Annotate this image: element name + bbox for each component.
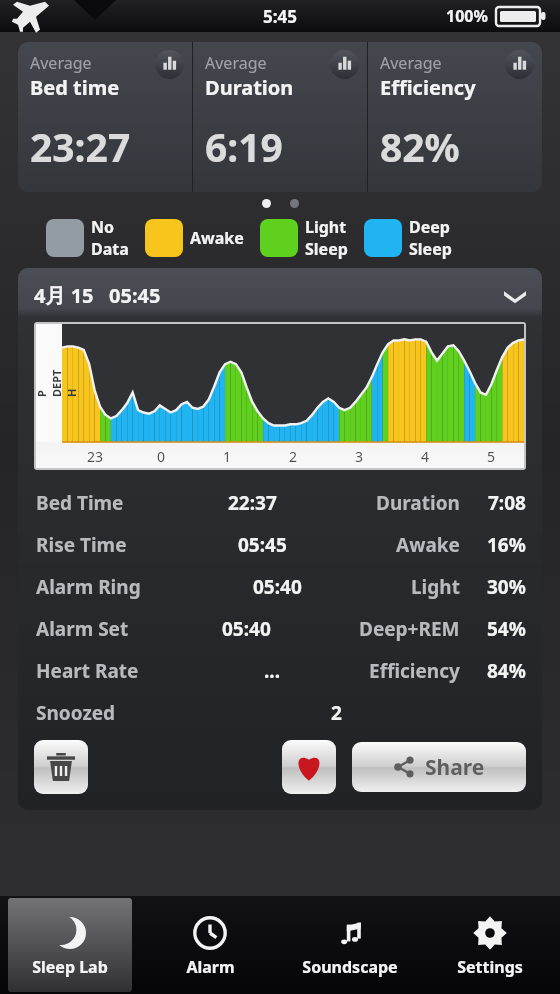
- staticText: 23:27: [30, 120, 131, 173]
- staticText: 16%: [487, 532, 526, 558]
- button[interactable]: Show Duration chart: [330, 50, 359, 79]
- staticText: Duration: [376, 490, 460, 516]
- staticText: Alarm: [186, 956, 235, 978]
- staticText: Average: [205, 52, 267, 74]
- staticText: 23: [87, 447, 104, 466]
- button[interactable]: Share: [352, 742, 526, 792]
- staticText: 05:40: [222, 616, 271, 642]
- staticText: Awake: [396, 532, 460, 558]
- button[interactable]: Favorite: [282, 740, 336, 794]
- button[interactable]: SLEEP DEPTH: [34, 322, 526, 470]
- button[interactable]: Soundscape: [288, 898, 412, 992]
- staticText: Settings: [457, 956, 523, 978]
- staticText: Average: [380, 52, 442, 74]
- staticText: No: [91, 216, 115, 238]
- staticText: 1: [223, 447, 232, 466]
- staticText: Snoozed: [36, 700, 116, 726]
- staticText: 05:40: [253, 574, 302, 600]
- staticText: Duration: [205, 74, 294, 101]
- button[interactable]: Average: [368, 42, 542, 192]
- staticText: Soundscape: [302, 956, 398, 978]
- staticText: Awake: [190, 227, 244, 249]
- button[interactable]: 4月 15 05:45: [18, 268, 542, 322]
- staticText: Sleep Lab: [32, 956, 108, 978]
- staticText: Alarm Ring: [36, 574, 141, 600]
- staticText: 54%: [487, 616, 526, 642]
- button[interactable]: Average: [18, 42, 192, 192]
- button[interactable]: Sleep Lab: [8, 898, 132, 992]
- staticText: 3: [355, 447, 364, 466]
- staticText: 5:45: [263, 5, 297, 28]
- staticText: Alarm Set: [36, 616, 129, 642]
- staticText: Bed Time: [36, 490, 124, 516]
- staticText: Share: [425, 753, 485, 782]
- staticText: 30%: [487, 574, 526, 600]
- staticText: 4: [421, 447, 430, 466]
- staticText: Rise Time: [36, 532, 127, 558]
- staticText: 82%: [380, 120, 460, 173]
- other: Collapse: [502, 282, 528, 308]
- staticText: Deep+REM: [359, 616, 460, 642]
- button[interactable]: Average: [193, 42, 367, 192]
- staticText: 22:37: [228, 490, 277, 516]
- staticText: Sleep: [409, 238, 452, 260]
- button[interactable]: Alarm: [148, 898, 272, 992]
- staticText: 2: [331, 700, 342, 726]
- button[interactable]: Show Bed time chart: [155, 50, 184, 79]
- staticText: 84%: [487, 658, 526, 684]
- staticText: Deep: [409, 216, 450, 238]
- staticText: 0: [157, 447, 166, 466]
- staticText: Light: [411, 574, 460, 600]
- staticText: Efficiency: [380, 74, 476, 101]
- button[interactable]: Show Efficiency chart: [505, 50, 534, 79]
- staticText: Average: [30, 52, 92, 74]
- staticText: Light: [305, 216, 347, 238]
- staticText: 6:19: [205, 120, 283, 173]
- staticText: Bed time: [30, 74, 120, 101]
- staticText: 7:08: [488, 490, 526, 516]
- staticText: 05:45: [238, 532, 287, 558]
- staticText: Efficiency: [369, 658, 460, 684]
- staticText: Data: [91, 238, 129, 260]
- staticText: Sleep: [305, 238, 348, 260]
- staticText: SLEEP DEPTH: [34, 367, 79, 397]
- staticText: 100%: [446, 5, 488, 27]
- button[interactable]: Settings: [428, 898, 552, 992]
- button[interactable]: Delete: [34, 740, 88, 794]
- staticText: 4月 15 05:45: [34, 282, 161, 309]
- staticText: ...: [264, 658, 281, 684]
- staticText: Heart Rate: [36, 658, 139, 684]
- staticText: 5: [487, 447, 496, 466]
- staticText: 2: [289, 447, 298, 466]
